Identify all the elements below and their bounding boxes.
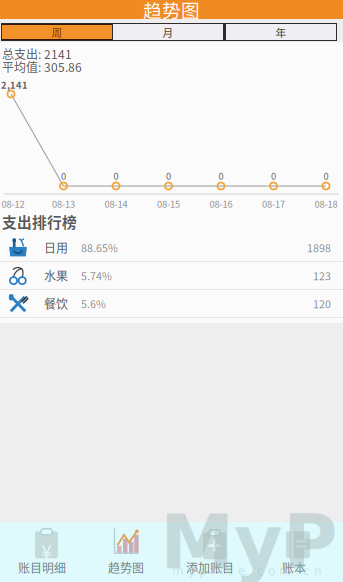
staticText: 日用: [44, 239, 68, 256]
staticText: 123: [313, 268, 331, 283]
staticText: 88.65%: [81, 240, 118, 255]
staticText: 账目明细: [18, 559, 66, 576]
staticText: 08-13: [52, 197, 75, 210]
button[interactable]: 周: [2, 24, 112, 40]
button[interactable]: 账本: [252, 522, 336, 580]
staticText: MyPrice: [160, 499, 343, 582]
staticText: 08-16: [209, 197, 232, 210]
staticText: 年: [275, 24, 286, 40]
button[interactable]: 月: [113, 24, 223, 40]
button[interactable]: 趋势图: [84, 522, 168, 580]
staticText: ¥: [41, 536, 52, 565]
staticText: 5.6%: [81, 296, 106, 311]
staticText: 0: [61, 169, 66, 182]
staticText: m y p r i c e . c o m . c n: [172, 564, 322, 578]
staticText: 月: [162, 24, 173, 40]
staticText: 1898: [307, 240, 331, 255]
staticText: 添加账目: [186, 559, 234, 576]
button[interactable]: 年: [226, 24, 336, 40]
staticText: 0: [271, 169, 276, 182]
staticText: 餐饮: [44, 295, 68, 312]
staticText: 总支出: 2141: [2, 45, 72, 62]
button[interactable]: 水果: [0, 262, 343, 290]
staticText: 120: [313, 296, 331, 311]
staticText: 08-18: [314, 197, 337, 210]
staticText: 2,141: [1, 78, 28, 91]
staticText: 08-14: [104, 197, 127, 210]
staticText: 账本: [282, 559, 306, 576]
button[interactable]: ¥: [0, 522, 84, 580]
staticText: 08-15: [157, 197, 180, 210]
staticText: 平均值: 305.86: [2, 58, 82, 75]
staticText: 水果: [44, 267, 68, 284]
staticText: 5.74%: [81, 268, 112, 283]
staticText: 0: [218, 169, 223, 182]
button[interactable]: 添加账目: [168, 522, 252, 580]
staticText: 支出排行榜: [2, 211, 77, 232]
staticText: 0: [323, 169, 328, 182]
staticText: 08-12: [1, 197, 24, 210]
button[interactable]: 日用: [0, 234, 343, 262]
staticText: 0: [166, 169, 171, 182]
button[interactable]: 餐饮: [0, 290, 343, 318]
staticText: 08-17: [262, 197, 285, 210]
staticText: 趋势图: [108, 559, 144, 576]
staticText: 周: [51, 24, 62, 40]
staticText: 趋势图: [143, 0, 200, 23]
staticText: 0: [113, 169, 118, 182]
